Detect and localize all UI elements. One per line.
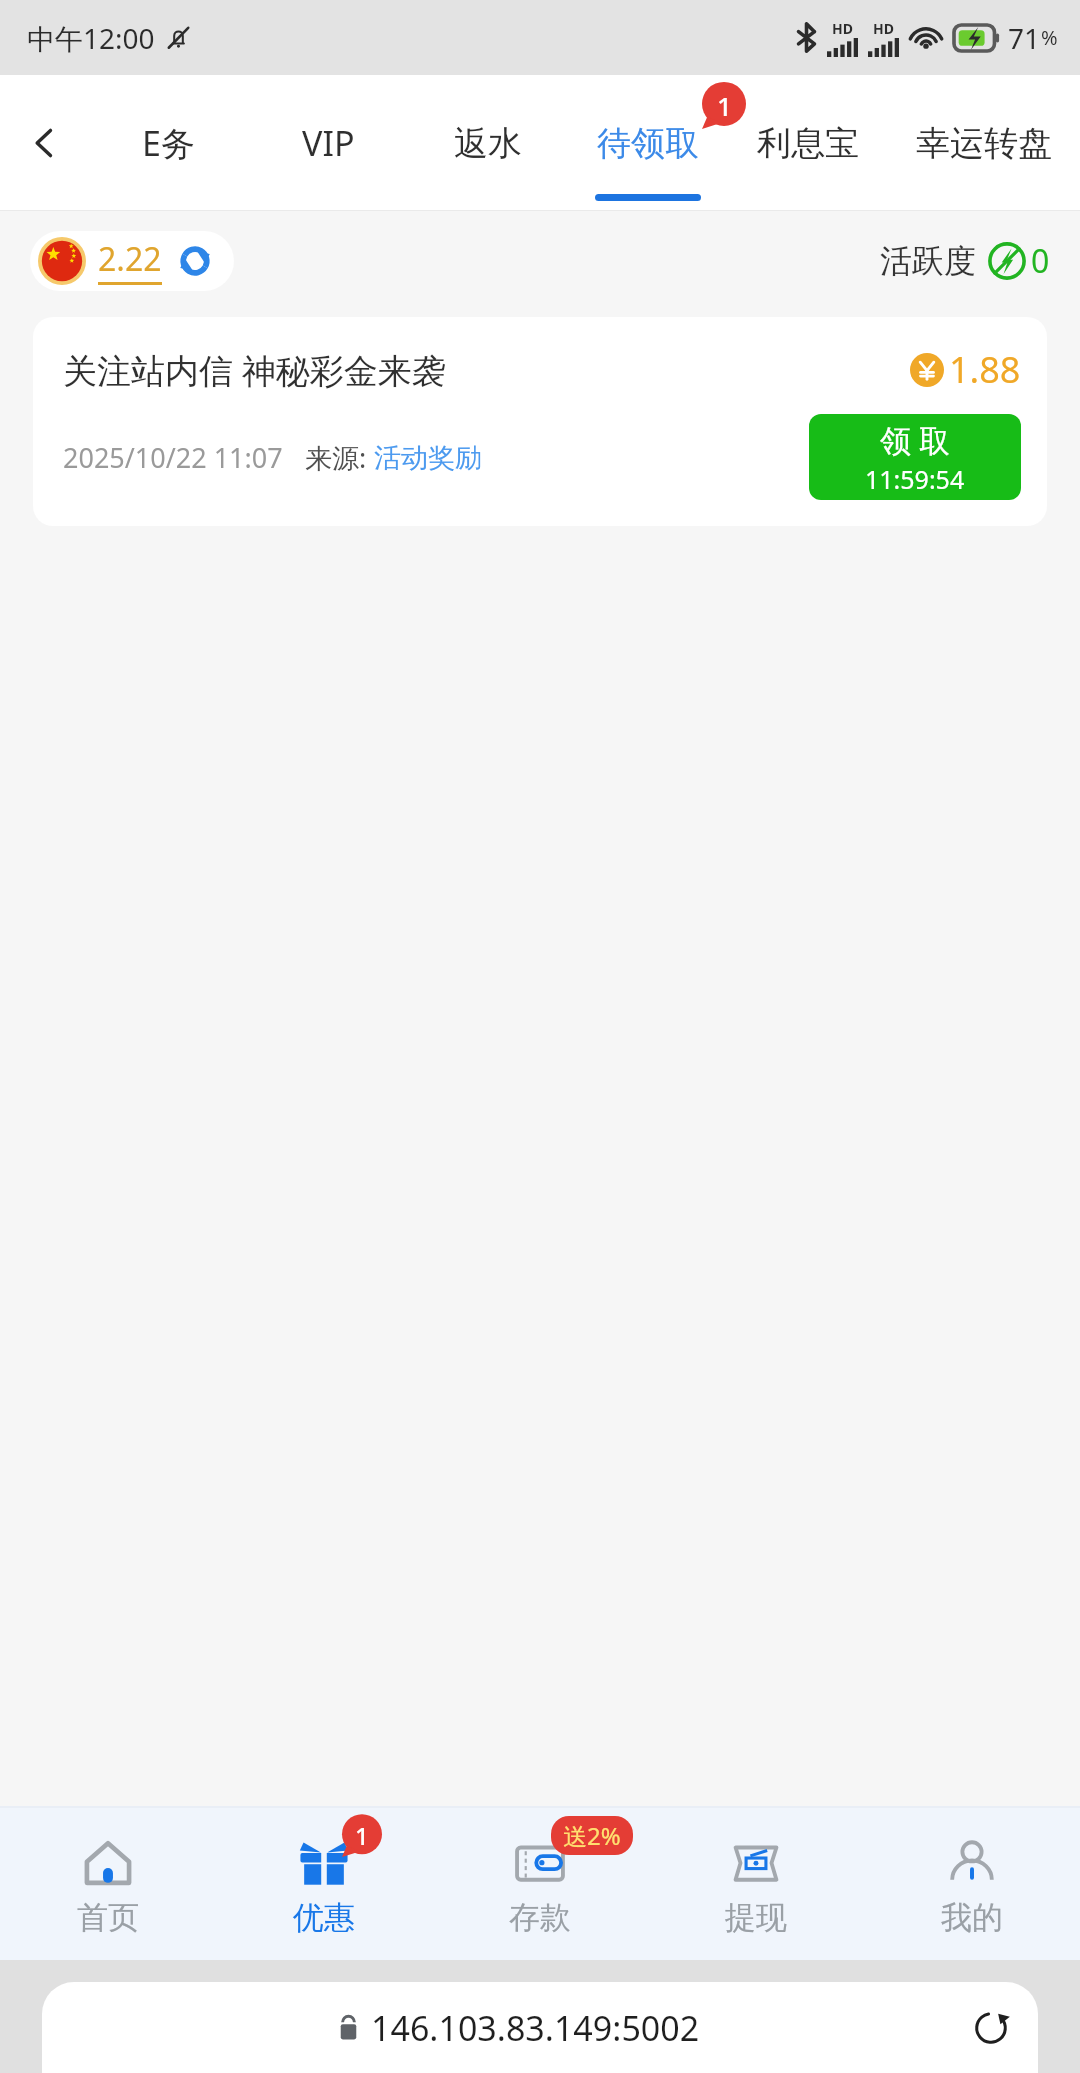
staticText: 1 bbox=[355, 1819, 369, 1852]
staticText: 2.22 bbox=[98, 237, 162, 281]
button[interactable]: 首页 bbox=[0, 1808, 216, 1960]
other: Reload bbox=[970, 2007, 1012, 2049]
button[interactable]: Back bbox=[0, 75, 88, 211]
staticText: 活跃度 bbox=[880, 241, 976, 281]
button[interactable]: 送2% bbox=[432, 1808, 648, 1960]
button[interactable]: 活跃度 bbox=[880, 239, 1050, 283]
button[interactable]: 146.103.83.149:5002 bbox=[42, 1982, 1038, 2073]
button[interactable]: 待领取 bbox=[568, 75, 728, 211]
staticText: 2025/10/22 11:07 bbox=[63, 439, 283, 476]
staticText: 幸运转盘 bbox=[916, 122, 1052, 165]
staticText: VIP bbox=[302, 120, 355, 166]
staticText: 关注站内信 神秘彩金来袭 bbox=[63, 347, 446, 393]
staticText: 71 bbox=[1008, 19, 1041, 57]
staticText: 首页 bbox=[77, 1898, 139, 1937]
staticText: 提现 bbox=[725, 1898, 787, 1937]
staticText: 146.103.83.149:5002 bbox=[371, 2005, 700, 2051]
staticText: 1.88 bbox=[949, 345, 1021, 394]
button[interactable]: 关注站内信 神秘彩金来袭 bbox=[33, 317, 1047, 526]
other: Refresh balance bbox=[176, 242, 214, 280]
button[interactable]: 2.22 bbox=[30, 231, 234, 291]
staticText: 我的 bbox=[941, 1898, 1003, 1937]
staticText: 来源: bbox=[305, 439, 374, 476]
staticText: HD bbox=[832, 19, 853, 38]
staticText: 待领取 bbox=[597, 122, 699, 165]
button[interactable]: 利息宝 bbox=[728, 75, 888, 211]
button[interactable]: 提现 bbox=[648, 1808, 864, 1960]
staticText: 中午12:00 bbox=[27, 19, 155, 57]
button[interactable]: E务 bbox=[88, 75, 248, 211]
button[interactable]: 我的 bbox=[864, 1808, 1080, 1960]
button[interactable]: 幸运转盘 bbox=[888, 75, 1080, 211]
staticText: 存款 bbox=[509, 1898, 571, 1937]
staticText: % bbox=[1041, 24, 1058, 51]
staticText: 1 bbox=[717, 88, 732, 123]
staticText: 送2% bbox=[563, 1819, 621, 1852]
staticText: 11:59:54 bbox=[865, 462, 965, 496]
button[interactable]: VIP bbox=[248, 75, 408, 211]
button[interactable]: 1 bbox=[216, 1808, 432, 1960]
staticText: 活动奖励 bbox=[374, 441, 482, 475]
staticText: 利息宝 bbox=[757, 122, 859, 165]
staticText: 领 取 bbox=[880, 419, 951, 461]
staticText: 优惠 bbox=[293, 1898, 355, 1937]
button[interactable]: 领 取 bbox=[809, 414, 1021, 500]
staticText: 0 bbox=[1031, 239, 1050, 283]
button[interactable]: 返水 bbox=[408, 75, 568, 211]
staticText: 返水 bbox=[454, 122, 522, 165]
staticText: E务 bbox=[142, 120, 195, 166]
staticText: HD bbox=[873, 19, 894, 38]
